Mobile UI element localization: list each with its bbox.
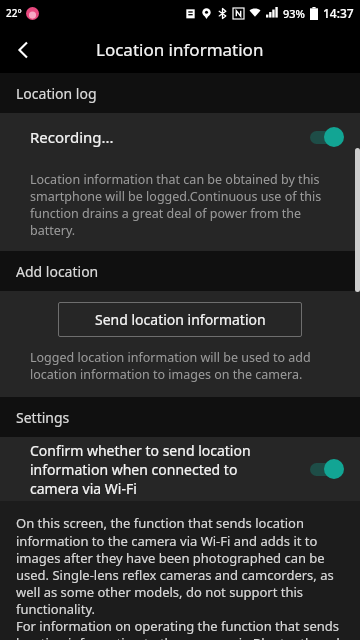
button[interactable]: Back	[0, 27, 46, 73]
staticText: Logged location information will be used…	[30, 349, 338, 383]
staticText: 14:37	[323, 5, 354, 21]
button[interactable]: Recording...	[0, 113, 360, 161]
staticText: Recording...	[30, 127, 114, 147]
staticText: 93%	[283, 6, 305, 21]
other: Toggle	[308, 127, 346, 147]
staticText: Location information	[96, 38, 264, 61]
staticText: Send location information	[95, 310, 266, 329]
staticText: Settings	[16, 408, 70, 427]
staticText: Confirm whether to send location informa…	[30, 441, 280, 498]
staticText: Location information that can be obtaine…	[30, 171, 338, 239]
staticText: Add location	[16, 262, 99, 281]
button[interactable]: Send location information	[58, 302, 302, 337]
staticText: Location log	[16, 84, 97, 103]
staticText: On this screen, the function that sends …	[16, 514, 346, 640]
other: Toggle	[308, 459, 346, 479]
button[interactable]: Confirm whether to send location informa…	[0, 437, 360, 501]
staticText: 22°	[6, 6, 22, 20]
